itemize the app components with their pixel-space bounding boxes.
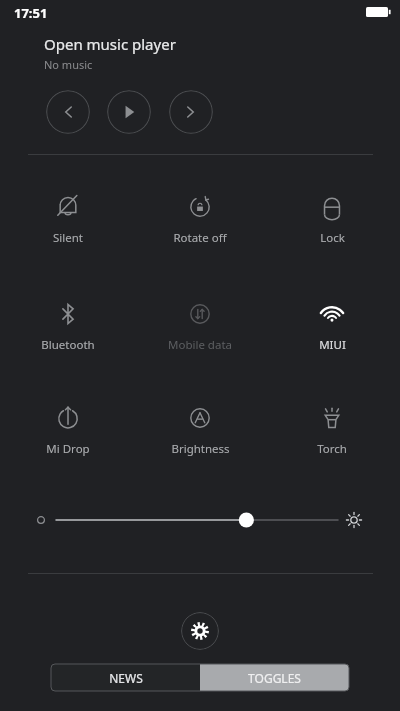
staticText: Torch (317, 441, 347, 457)
button[interactable]: Media control (46, 90, 90, 134)
staticText: NEWS (109, 670, 143, 686)
staticText: Bluetooth (41, 337, 95, 353)
button[interactable]: Brightness (152, 401, 248, 463)
staticText: Brightness (171, 441, 230, 457)
staticText: Mi Drop (46, 441, 90, 457)
staticText: Rotate off (173, 230, 227, 246)
staticText: TOGGLES (248, 670, 301, 686)
button[interactable]: Media control (107, 90, 151, 134)
staticText: MIUI (319, 337, 346, 353)
button[interactable]: Mi Drop (20, 401, 116, 463)
button[interactable]: Bluetooth (20, 297, 116, 359)
button[interactable]: Settings (181, 612, 219, 650)
button[interactable]: MIUI (284, 297, 380, 359)
button[interactable]: Rotate off (152, 190, 248, 252)
button[interactable]: NEWS (51, 664, 200, 691)
staticText: 17:51 (14, 4, 48, 22)
button[interactable]: Mobile data (152, 297, 248, 359)
button[interactable]: Silent (20, 190, 116, 252)
staticText: No music (44, 57, 93, 72)
button[interactable]: Open music player (44, 34, 176, 54)
button[interactable]: Lock (284, 190, 380, 252)
button[interactable]: TOGGLES (200, 664, 349, 691)
staticText: Mobile data (168, 337, 232, 353)
button[interactable]: Torch (284, 401, 380, 463)
staticText: Open music player (44, 34, 176, 54)
staticText: Silent (53, 230, 83, 246)
button[interactable]: Media control (169, 90, 213, 134)
staticText: Lock (320, 230, 345, 246)
button[interactable]: Brightness slider (36, 505, 364, 535)
